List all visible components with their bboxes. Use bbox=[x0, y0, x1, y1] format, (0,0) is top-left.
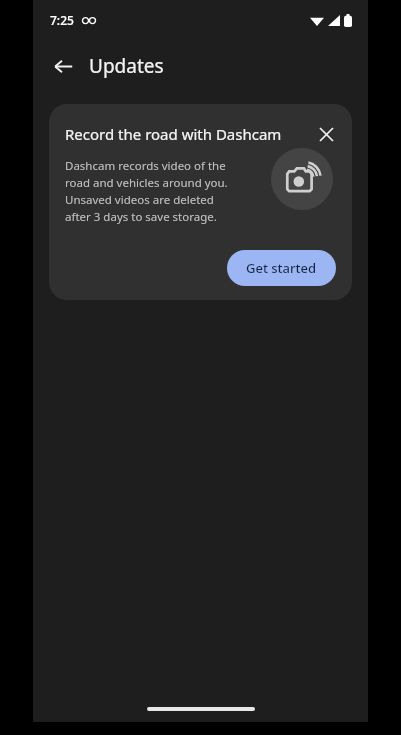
button[interactable]: Get started bbox=[227, 250, 336, 286]
button[interactable]: Back bbox=[43, 46, 83, 86]
staticText: Updates bbox=[89, 53, 164, 79]
staticText: Record the road with Dashcam bbox=[65, 124, 310, 144]
button[interactable]: Close bbox=[310, 118, 342, 150]
staticText: 7:25 bbox=[50, 12, 74, 28]
staticText: Dashcam records video of the road and ve… bbox=[65, 158, 237, 225]
staticText: Get started bbox=[246, 259, 317, 277]
